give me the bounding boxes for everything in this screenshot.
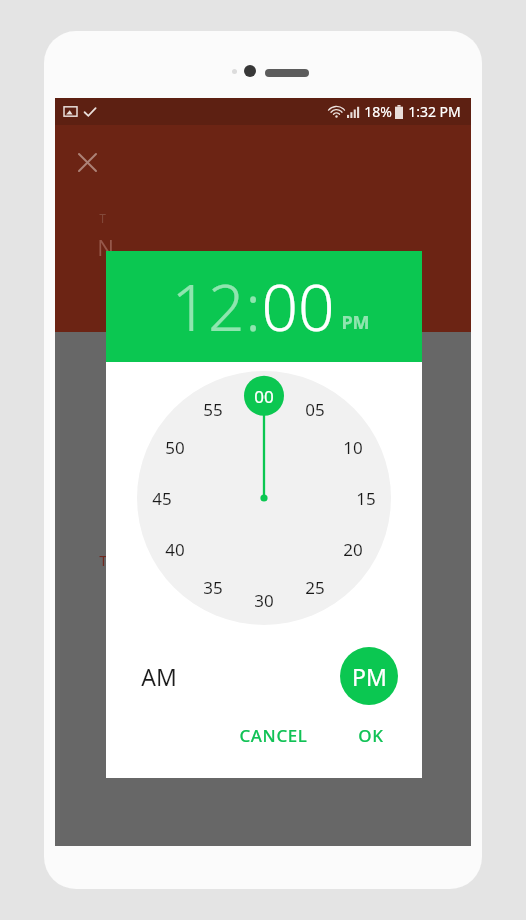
button[interactable]: 05: [295, 389, 335, 429]
button[interactable]: 20: [333, 529, 373, 569]
staticText: 00: [254, 385, 274, 408]
staticText: 50: [165, 436, 185, 459]
button[interactable]: 25: [295, 567, 335, 607]
staticText: 1:32 PM: [408, 102, 461, 121]
button[interactable]: 30: [244, 580, 284, 620]
button[interactable]: Send: [379, 328, 435, 384]
staticText: N: [97, 232, 114, 262]
staticText: 35: [203, 576, 223, 599]
button[interactable]: 55: [193, 389, 233, 429]
staticText: OK: [358, 724, 384, 747]
staticText: 25: [305, 576, 325, 599]
button[interactable]: 00: [261, 263, 335, 350]
staticText: T: [99, 550, 108, 570]
staticText: 30: [254, 589, 274, 612]
staticText: T: [99, 210, 106, 226]
button[interactable]: 45: [142, 478, 182, 518]
staticText: AM: [141, 661, 177, 692]
button[interactable]: PM: [340, 647, 398, 705]
staticText: :: [245, 263, 261, 350]
button[interactable]: 50: [155, 427, 195, 467]
button[interactable]: Close: [65, 140, 109, 184]
staticText: CANCEL: [239, 724, 308, 747]
button[interactable]: 12: [171, 263, 245, 350]
button[interactable]: AM: [132, 649, 186, 703]
staticText: PM: [341, 310, 370, 335]
staticText: 45: [152, 487, 172, 510]
button[interactable]: 40: [155, 529, 195, 569]
button[interactable]: 15: [346, 478, 386, 518]
staticText: 20: [343, 538, 363, 561]
button[interactable]: PM: [341, 310, 370, 335]
staticText: 12: [171, 263, 245, 350]
button[interactable]: 00: [244, 376, 284, 416]
button[interactable]: 10: [333, 427, 373, 467]
staticText: 05: [305, 398, 325, 421]
button[interactable]: OK: [348, 718, 394, 753]
button[interactable]: 35: [193, 567, 233, 607]
button[interactable]: CANCEL: [229, 718, 318, 753]
staticText: PM: [352, 661, 387, 692]
staticText: 55: [203, 398, 223, 421]
staticText: 15: [356, 487, 376, 510]
staticText: 10: [343, 436, 363, 459]
staticText: 00: [261, 263, 335, 350]
staticText: 18%: [364, 102, 392, 121]
staticText: 40: [165, 538, 185, 561]
